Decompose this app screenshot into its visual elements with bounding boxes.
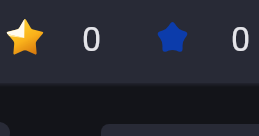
button[interactable]: Menu xyxy=(0,122,10,136)
staticText: 0 xyxy=(82,19,102,59)
button[interactable]: Blue stars: 0 xyxy=(150,8,255,66)
button[interactable]: Gold stars: 0 xyxy=(2,8,106,66)
staticText: 0 xyxy=(231,19,251,59)
